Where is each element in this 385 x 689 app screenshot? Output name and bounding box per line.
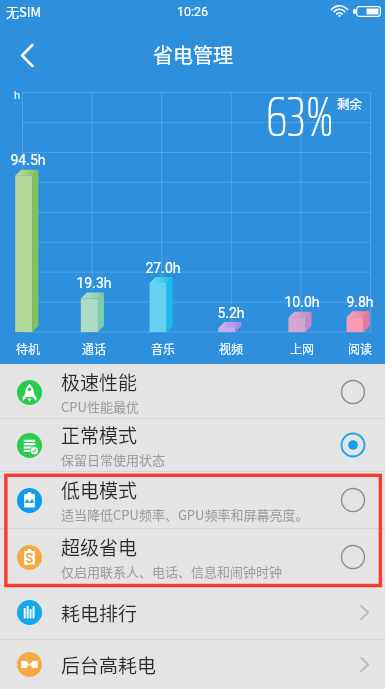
staticText: 10.0h xyxy=(262,294,342,310)
staticText: 仅启用联系人、电话、信息和闹钟时钟 xyxy=(61,562,283,581)
staticText: 无SIM xyxy=(6,2,42,21)
staticText: 94.5h xyxy=(0,152,68,168)
staticText: 63% xyxy=(266,74,334,161)
staticText: 5.2h xyxy=(191,305,271,321)
staticText: 9.8h xyxy=(320,294,385,310)
staticText: 27.0h xyxy=(123,260,203,276)
button[interactable]: 低电模式 xyxy=(0,472,385,528)
staticText: 剩余 xyxy=(337,94,363,112)
staticText: 阅读 xyxy=(320,340,385,357)
staticText: 上网 xyxy=(262,340,342,357)
staticText: 正常模式 xyxy=(61,421,138,449)
button[interactable]: 超级省电 xyxy=(0,529,385,585)
button[interactable]: Back xyxy=(0,28,54,82)
button[interactable]: Select xyxy=(338,542,368,572)
button[interactable]: Selected xyxy=(338,430,368,460)
staticText: 超级省电 xyxy=(61,533,138,561)
staticText: 适当降低CPU频率、GPU频率和屏幕亮度。 xyxy=(61,505,309,524)
button[interactable]: Select xyxy=(338,485,368,515)
staticText: 音乐 xyxy=(123,340,203,357)
staticText: 省电管理 xyxy=(153,40,233,69)
staticText: 耗电排行 xyxy=(61,599,360,627)
staticText: 通话 xyxy=(54,340,134,357)
button[interactable]: 耗电排行 xyxy=(0,586,385,639)
staticText: CPU性能最优 xyxy=(61,397,139,416)
staticText: h xyxy=(14,89,21,102)
button[interactable]: Select xyxy=(338,377,368,407)
staticText: 后台高耗电 xyxy=(61,651,360,679)
staticText: 保留日常使用状态 xyxy=(61,450,166,469)
staticText: 19.3h xyxy=(54,275,134,291)
button[interactable]: 后台高耗电 xyxy=(0,640,385,689)
staticText: 视频 xyxy=(191,340,271,357)
button[interactable]: 正常模式 xyxy=(0,419,385,471)
staticText: 待机 xyxy=(0,340,68,357)
staticText: 低电模式 xyxy=(61,476,138,504)
button[interactable]: 极速性能 xyxy=(0,366,385,418)
staticText: 10:26 xyxy=(177,4,209,19)
staticText: 极速性能 xyxy=(61,368,138,396)
